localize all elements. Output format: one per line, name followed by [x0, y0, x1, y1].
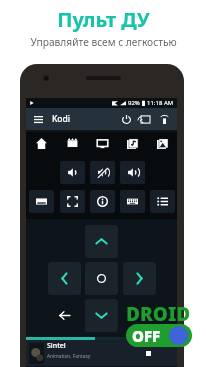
button[interactable]: TV [90, 132, 115, 155]
button[interactable]: Stop [141, 346, 155, 360]
button[interactable]: Subtitles [29, 190, 54, 213]
staticText: Пульт ДУ [57, 6, 150, 33]
button[interactable]: Select [85, 262, 118, 295]
button[interactable]: Sintel [26, 340, 177, 366]
button[interactable]: Right [123, 262, 156, 295]
button[interactable]: Left [48, 262, 81, 295]
button[interactable]: Info [90, 190, 115, 213]
button[interactable]: Down [85, 299, 118, 332]
button[interactable]: Back [48, 299, 81, 332]
button[interactable]: Menu [31, 112, 46, 127]
staticText: Sintel [47, 341, 66, 351]
button[interactable]: Power [118, 111, 134, 127]
button[interactable]: Fullscreen [60, 190, 85, 213]
button[interactable]: Mute [90, 161, 115, 184]
button[interactable]: Keyboard [120, 190, 145, 213]
staticText: 11:18 AM [147, 99, 174, 107]
button[interactable]: Movies [60, 132, 85, 155]
button[interactable]: Cast [137, 111, 153, 127]
button[interactable]: Up [85, 225, 118, 258]
button[interactable]: Remote [156, 111, 172, 127]
button[interactable]: VolUp [120, 161, 145, 184]
button[interactable]: Pictures [150, 132, 175, 155]
staticText: Управляйте всем с легкостью [30, 35, 177, 49]
staticText: OFF [132, 326, 161, 346]
staticText: DROID [126, 301, 191, 327]
staticText: Animation, Fantasy [47, 353, 91, 360]
staticText: Kodi [52, 113, 71, 125]
button[interactable]: VolDown [60, 161, 85, 184]
button[interactable]: Home [29, 132, 54, 155]
button[interactable]: Music [120, 132, 145, 155]
staticText: 92% [128, 99, 140, 107]
button[interactable]: Playlist [150, 190, 175, 213]
